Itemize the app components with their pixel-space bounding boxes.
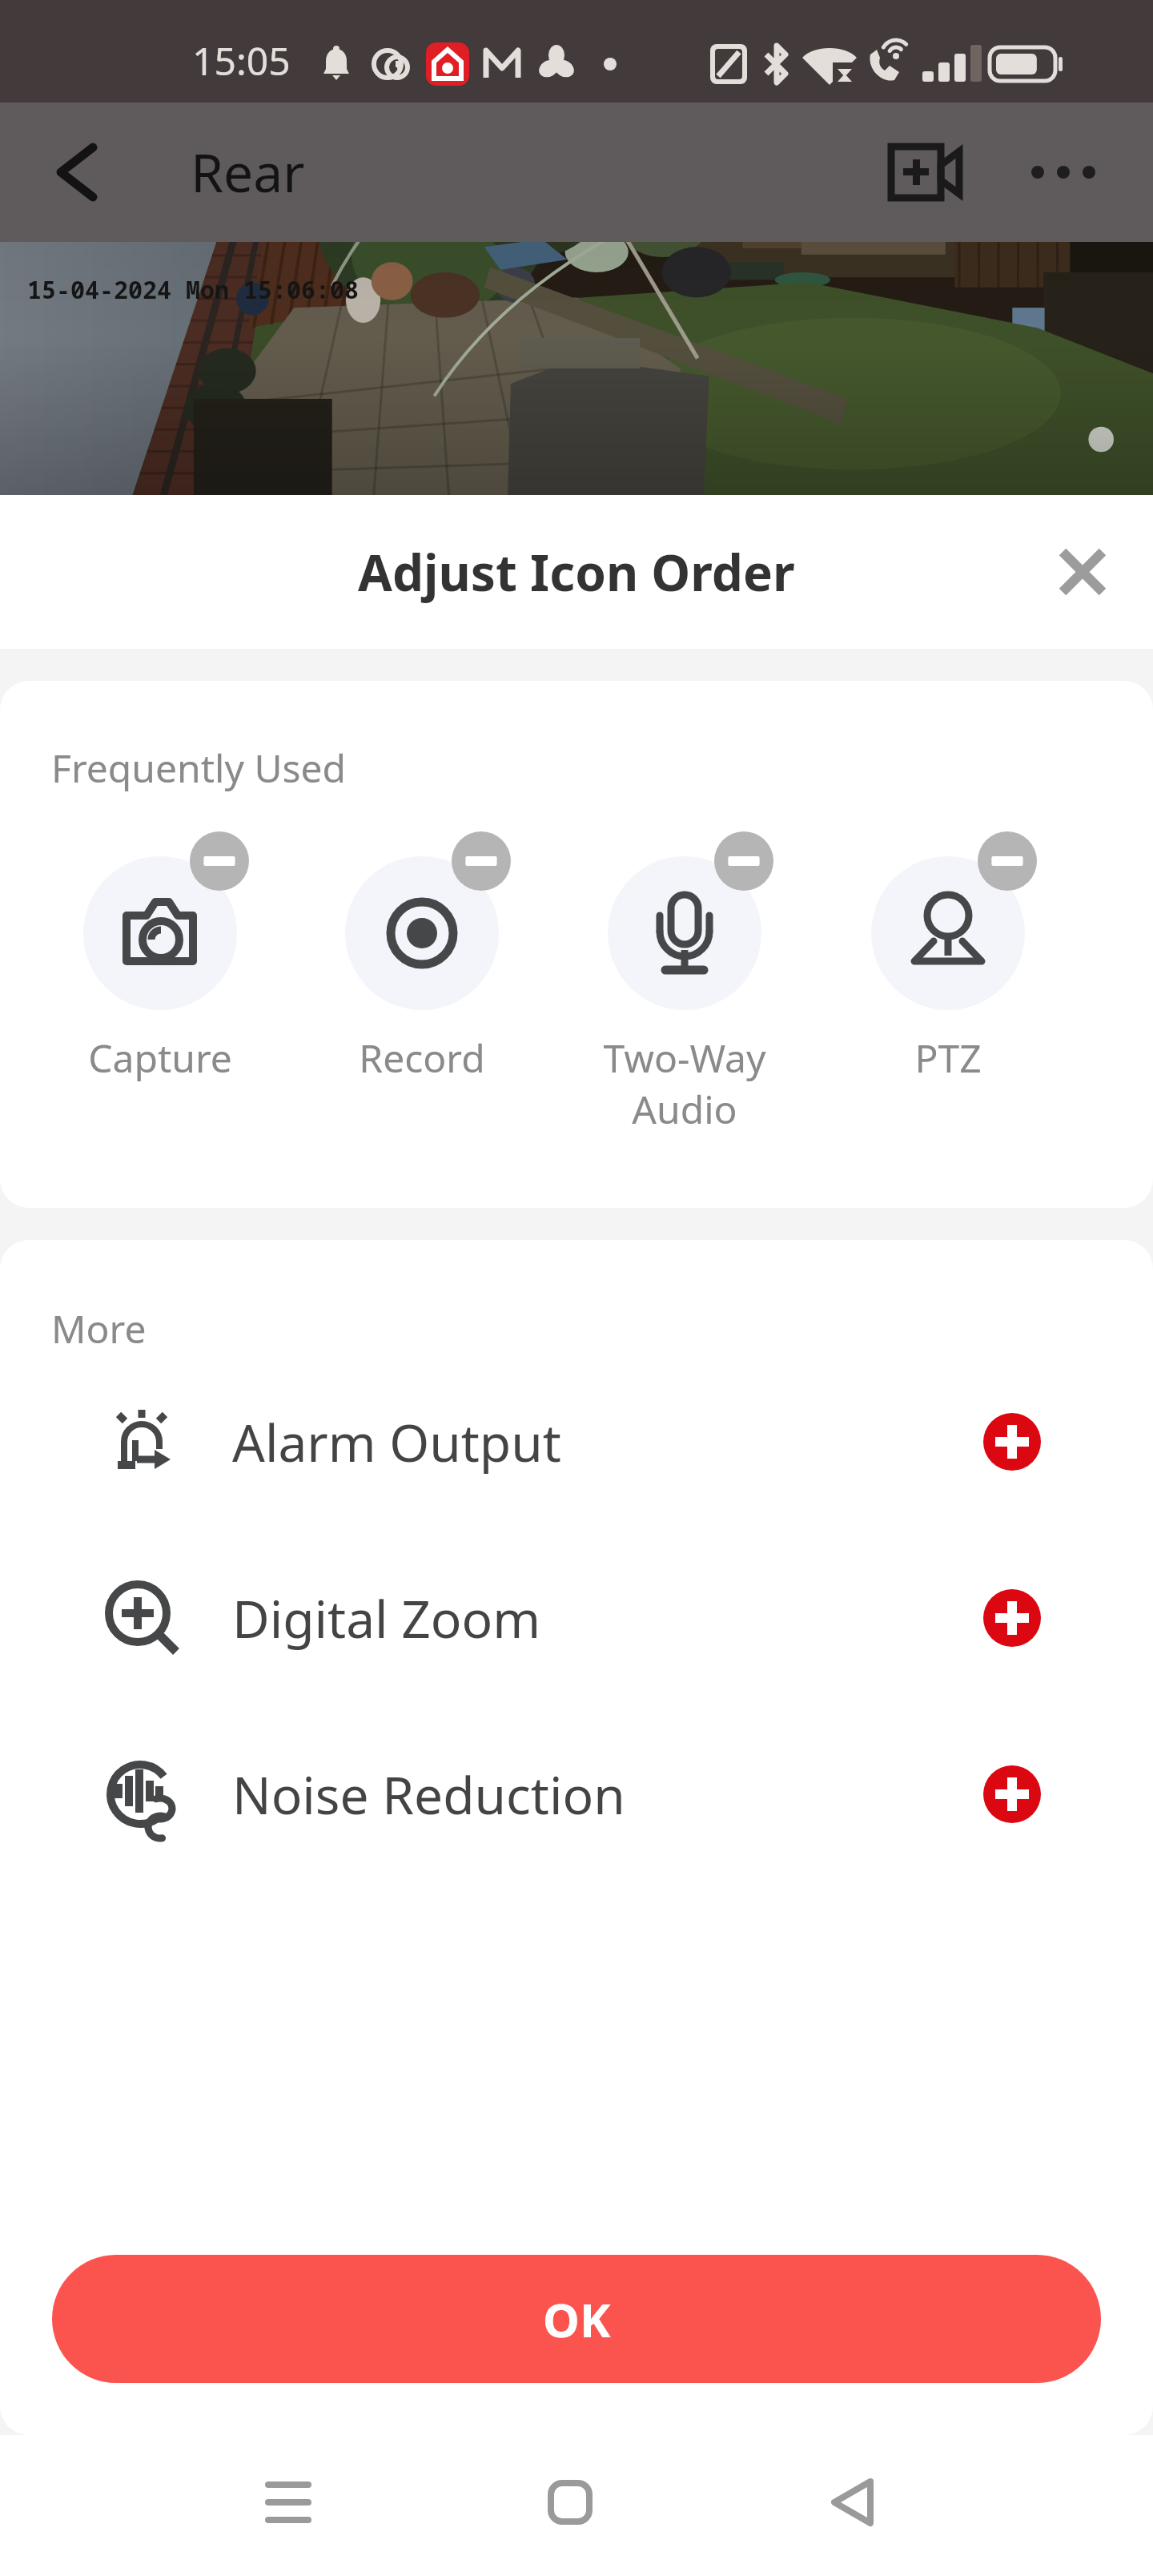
staticText: Frequently Used xyxy=(51,742,347,794)
staticText: Rear xyxy=(191,135,305,207)
button[interactable]: Close xyxy=(1031,521,1134,623)
staticText: PTZ xyxy=(840,1032,1056,1084)
staticText: Capture xyxy=(52,1032,268,1084)
button[interactable]: Home xyxy=(503,2435,637,2576)
button[interactable]: Record clip xyxy=(866,116,978,228)
button[interactable]: Two-Way Audio xyxy=(576,831,793,1072)
button[interactable]: PTZ xyxy=(840,831,1056,1072)
staticText: Noise Reduction xyxy=(232,1760,625,1829)
button[interactable]: Noise Reduction xyxy=(0,1706,1153,1882)
button[interactable]: Add Noise Reduction xyxy=(974,1756,1051,1833)
button[interactable]: Add Digital Zoom xyxy=(974,1580,1051,1656)
button[interactable]: Capture xyxy=(52,831,268,1072)
staticText: 15-04-2024 Mon 15:06:08 xyxy=(27,273,359,306)
button[interactable]: Back xyxy=(21,116,133,228)
staticText: 15:05 xyxy=(192,34,291,87)
button[interactable]: Back xyxy=(785,2435,920,2576)
button[interactable]: More options xyxy=(1007,116,1119,228)
button[interactable]: OK xyxy=(52,2255,1101,2383)
button[interactable]: Record xyxy=(314,831,530,1072)
button[interactable]: Recent apps xyxy=(221,2435,356,2576)
staticText: Record xyxy=(314,1032,530,1084)
staticText: OK xyxy=(543,2288,611,2351)
staticText: More xyxy=(51,1302,147,1354)
staticText: Alarm Output xyxy=(232,1407,561,1477)
button[interactable]: Alarm Output xyxy=(0,1354,1153,1530)
button[interactable]: Digital Zoom xyxy=(0,1530,1153,1706)
button[interactable]: Add Alarm Output xyxy=(974,1403,1051,1480)
staticText: Two-Way Audio xyxy=(576,1032,793,1135)
staticText: Digital Zoom xyxy=(232,1584,541,1653)
staticText: Adjust Icon Order xyxy=(358,538,795,606)
